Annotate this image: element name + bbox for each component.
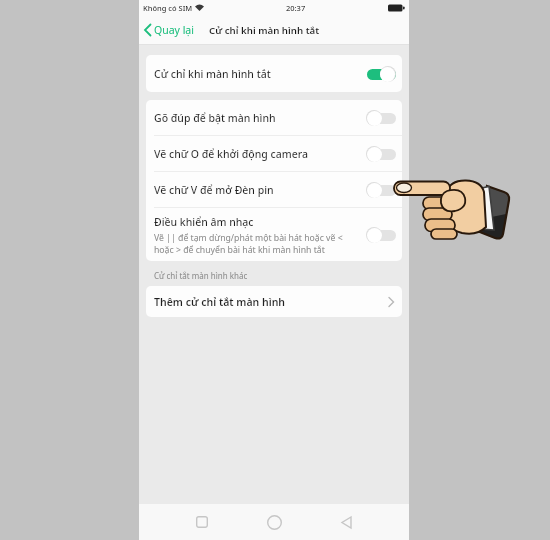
staticText: Cử chỉ khi màn hình tắt	[154, 67, 271, 81]
staticText: 20:37	[286, 3, 306, 13]
staticText: Quay lại	[154, 23, 194, 37]
button[interactable]: Quay lại	[143, 23, 194, 37]
staticText: Không có SIM	[143, 3, 193, 13]
staticText: Vẽ chữ V để mở Đèn pin	[154, 183, 274, 197]
button[interactable]	[166, 504, 238, 540]
staticText: Cử chỉ khi màn hình tắt	[209, 24, 320, 37]
button[interactable]: Vẽ chữ V để mở Đèn pin	[146, 172, 402, 207]
button[interactable]: Điều khiển âm nhạc	[146, 208, 402, 261]
button[interactable]: Thêm cử chỉ tắt màn hình	[146, 286, 402, 317]
button[interactable]: Vẽ chữ O để khởi động camera	[146, 136, 402, 171]
staticText: Vẽ chữ O để khởi động camera	[154, 147, 308, 161]
staticText: Vẽ || để tạm dừng/phát một bài hát hoặc …	[154, 232, 343, 255]
staticText: Thêm cử chỉ tắt màn hình	[154, 295, 286, 309]
staticText: Gõ đúp để bật màn hình	[154, 111, 276, 125]
button[interactable]: Gõ đúp để bật màn hình	[146, 100, 402, 135]
button[interactable]	[238, 504, 310, 540]
staticText: Điều khiển âm nhạc	[154, 215, 254, 229]
button[interactable]: Cử chỉ khi màn hình tắt	[146, 55, 402, 92]
staticText: Cử chỉ tắt màn hình khác	[154, 270, 248, 281]
button[interactable]	[310, 504, 382, 540]
